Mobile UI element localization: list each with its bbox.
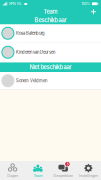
- staticText: 100%: [81, 2, 90, 6]
- staticText: Sonem Veldmen: [16, 78, 47, 83]
- button[interactable]: Rosa Batenburg: [0, 24, 101, 42]
- staticText: Team: [33, 174, 42, 178]
- staticText: Beschikbaar: [34, 17, 66, 23]
- staticText: 8: [66, 162, 68, 166]
- staticText: Dagen: [7, 174, 18, 178]
- staticText: KPN NL: [9, 2, 22, 6]
- staticText: Niet beschikbaar: [29, 64, 71, 70]
- button[interactable]: Sonem Veldmen: [0, 72, 101, 90]
- button[interactable]: Add: [88, 6, 99, 17]
- staticText: Gesprekken: [53, 174, 73, 178]
- button[interactable]: Dagen: [0, 161, 25, 180]
- button[interactable]: Instellingen: [76, 161, 101, 180]
- button[interactable]: Team: [25, 161, 50, 180]
- button[interactable]: Kinderen van Deursen: [0, 42, 101, 62]
- staticText: Kinderen van Deursen: [16, 50, 55, 55]
- staticText: Rosa Batenburg: [16, 31, 45, 36]
- staticText: Instellingen: [79, 174, 98, 178]
- button[interactable]: 8: [50, 161, 76, 180]
- staticText: Team: [43, 8, 57, 15]
